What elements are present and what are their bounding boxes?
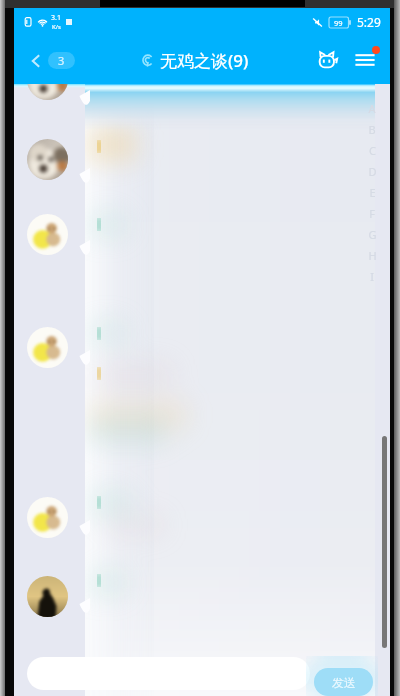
staticText: K/s (52, 23, 61, 31)
button[interactable]: Back, 3 unread (24, 46, 79, 75)
staticText: C (369, 143, 376, 158)
staticText: 无鸡之谈(9) (160, 49, 249, 72)
button[interactable]: Group pet (312, 45, 342, 75)
button[interactable]: Avatar (27, 576, 68, 617)
staticText: G (368, 227, 377, 242)
staticText: 3.1 (51, 13, 61, 23)
staticText: 5:29 (357, 14, 381, 30)
staticText: 3 (58, 53, 65, 68)
button[interactable]: Avatar (27, 139, 68, 180)
button[interactable]: Avatar (27, 327, 68, 368)
button[interactable]: Message input (27, 657, 310, 690)
button[interactable]: Menu (350, 45, 380, 75)
staticText: F (369, 206, 375, 221)
button[interactable]: Avatar (27, 84, 68, 100)
staticText: B (368, 122, 376, 137)
button[interactable]: 发送 (314, 668, 373, 696)
staticText: 发送 (332, 675, 356, 690)
button[interactable]: Avatar (27, 497, 68, 538)
staticText: E (369, 185, 376, 200)
staticText: A (368, 101, 376, 116)
staticText: 99 (334, 18, 343, 28)
staticText: D (368, 164, 377, 179)
button[interactable]: Avatar (27, 214, 68, 255)
staticText: I (370, 269, 374, 284)
staticText: H (368, 248, 377, 263)
